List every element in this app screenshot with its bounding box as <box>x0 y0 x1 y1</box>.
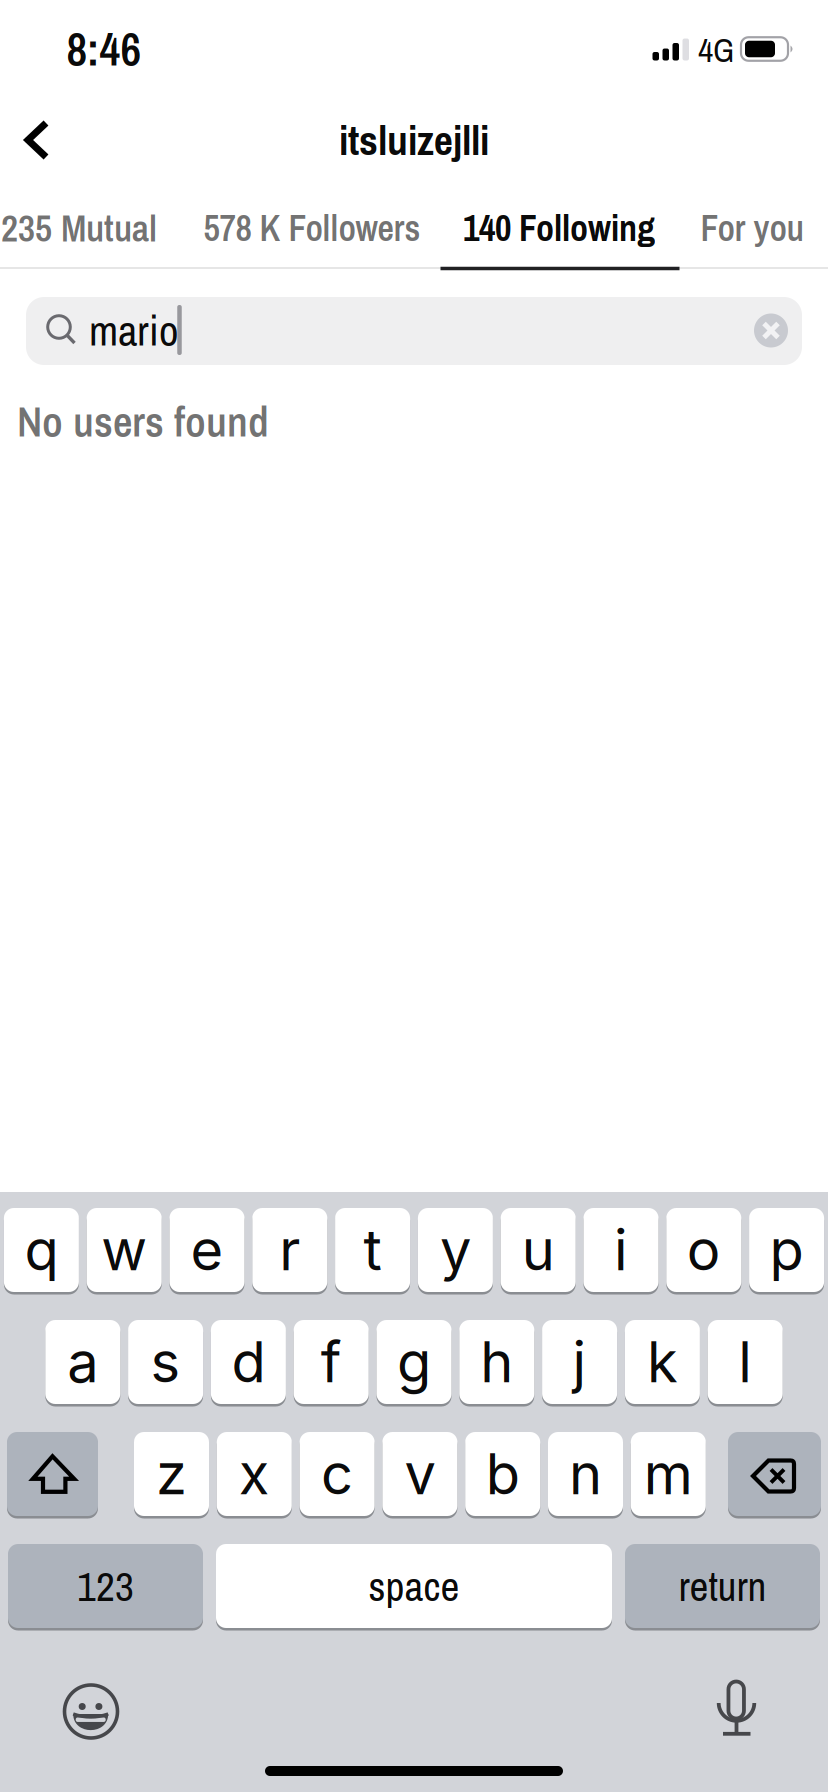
button[interactable]: 123 <box>8 1544 203 1628</box>
staticText: d <box>231 1329 265 1395</box>
staticText: c <box>321 1441 353 1507</box>
staticText: j <box>573 1329 587 1395</box>
staticText: h <box>480 1329 513 1395</box>
staticText: z <box>156 1441 187 1507</box>
staticText: q <box>24 1217 58 1283</box>
staticText: space <box>368 1559 459 1613</box>
staticText: 140 Following <box>463 204 655 252</box>
button[interactable]: For you <box>700 204 803 252</box>
button[interactable]: h <box>459 1320 534 1404</box>
button[interactable]: 578 K Followers <box>203 204 420 252</box>
staticText: a <box>67 1329 98 1395</box>
button[interactable]: l <box>708 1320 783 1404</box>
button[interactable]: z <box>134 1432 209 1516</box>
button[interactable]: Back <box>15 118 59 162</box>
staticText: b <box>486 1441 520 1507</box>
staticText: n <box>569 1441 602 1507</box>
staticText: v <box>404 1441 435 1507</box>
staticText: 578 K Followers <box>203 204 420 252</box>
button[interactable]: d <box>211 1320 286 1404</box>
staticText: itsluizejlli <box>339 113 489 167</box>
staticText: 8:46 <box>66 19 141 79</box>
staticText: w <box>101 1217 147 1283</box>
button[interactable]: 235 Mutual <box>1 203 157 252</box>
button[interactable]: space <box>216 1544 612 1628</box>
button[interactable]: o <box>666 1208 741 1292</box>
button[interactable]: m <box>631 1432 706 1516</box>
button[interactable]: Emoji <box>56 1676 126 1746</box>
button[interactable]: Search <box>26 297 802 365</box>
staticText: For you <box>700 204 803 252</box>
staticText: 235 Mutual <box>1 203 157 252</box>
button[interactable]: u <box>501 1208 576 1292</box>
button[interactable]: v <box>382 1432 457 1516</box>
button[interactable]: n <box>548 1432 623 1516</box>
button[interactable]: g <box>376 1320 451 1404</box>
staticText: k <box>647 1329 678 1395</box>
staticText: f <box>321 1329 342 1395</box>
button[interactable]: 140 Following <box>463 204 655 252</box>
button[interactable]: f <box>294 1320 369 1404</box>
staticText: l <box>738 1329 752 1395</box>
button[interactable]: s <box>128 1320 203 1404</box>
staticText: t <box>364 1217 382 1283</box>
staticText: g <box>397 1329 431 1395</box>
staticText: return <box>678 1559 766 1613</box>
button[interactable]: i <box>583 1208 658 1292</box>
button[interactable]: p <box>749 1208 824 1292</box>
button[interactable]: Dictation <box>702 1674 772 1744</box>
button[interactable]: Clear search text <box>754 313 788 347</box>
button[interactable]: x <box>217 1432 292 1516</box>
button[interactable]: t <box>335 1208 410 1292</box>
button[interactable]: c <box>300 1432 375 1516</box>
button[interactable]: w <box>87 1208 162 1292</box>
button[interactable]: r <box>252 1208 327 1292</box>
staticText: u <box>522 1217 555 1283</box>
staticText: mario <box>89 302 178 358</box>
staticText: p <box>770 1217 804 1283</box>
staticText: 4G <box>698 28 734 72</box>
button[interactable]: y <box>418 1208 493 1292</box>
staticText: y <box>440 1217 471 1283</box>
staticText: x <box>239 1441 270 1507</box>
staticText: r <box>279 1217 300 1283</box>
button[interactable]: a <box>45 1320 120 1404</box>
staticText: No users found <box>17 393 269 449</box>
staticText: 123 <box>77 1559 134 1613</box>
staticText: m <box>644 1441 693 1507</box>
staticText: o <box>687 1217 721 1283</box>
button[interactable]: q <box>4 1208 79 1292</box>
button[interactable]: j <box>542 1320 617 1404</box>
button[interactable]: k <box>625 1320 700 1404</box>
button[interactable]: e <box>169 1208 244 1292</box>
staticText: e <box>190 1217 223 1283</box>
staticText: s <box>151 1329 181 1395</box>
button[interactable]: Shift <box>7 1432 98 1516</box>
staticText: i <box>614 1217 628 1283</box>
button[interactable]: return <box>625 1544 820 1628</box>
button[interactable]: b <box>465 1432 540 1516</box>
button[interactable]: Delete <box>728 1432 821 1516</box>
